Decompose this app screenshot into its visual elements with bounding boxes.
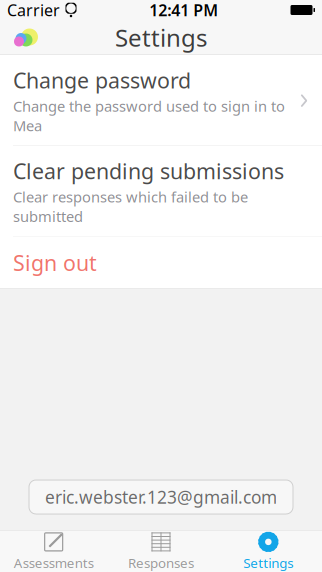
staticText: Clear pending submissions [13, 157, 284, 185]
button[interactable]: Responses [107, 531, 215, 572]
staticText: Responses [128, 554, 194, 572]
staticText: Carrier [7, 0, 60, 21]
staticText: 12:41 PM [149, 0, 218, 21]
staticText: Sign out [13, 249, 97, 277]
staticText: Settings [115, 22, 207, 53]
staticText: Change the password used to sign in to M… [13, 96, 285, 135]
button[interactable]: Clear pending submissions [0, 146, 322, 236]
staticText: Change password [13, 66, 191, 94]
staticText: eric.webster.123@gmail.com [45, 485, 277, 508]
button[interactable]: App logo [4, 20, 44, 54]
staticText: Settings [243, 554, 293, 572]
staticText: Assessments [14, 554, 94, 572]
button[interactable]: Assessments [0, 531, 107, 572]
button[interactable]: Change password [0, 55, 322, 145]
button[interactable]: Sign out [0, 237, 322, 289]
button[interactable]: Settings [215, 531, 322, 572]
button[interactable]: eric.webster.123@gmail.com [29, 480, 293, 514]
staticText: Clear responses which failed to be submi… [13, 187, 248, 226]
